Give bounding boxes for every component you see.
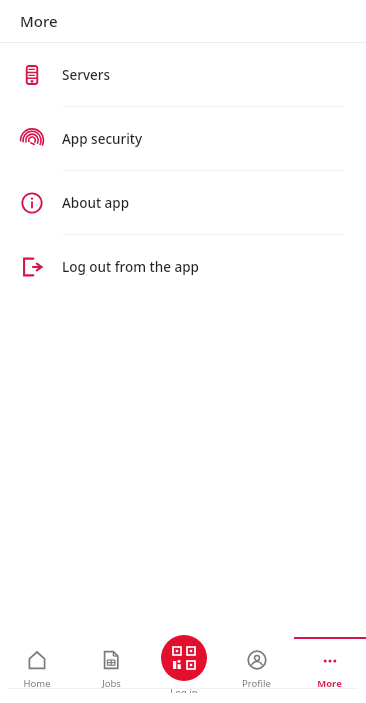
staticText: Jobs — [102, 677, 121, 690]
button[interactable]: Home — [0, 621, 74, 693]
staticText: Profile — [242, 677, 271, 690]
staticText: Servers — [62, 66, 111, 84]
button[interactable]: About app — [0, 171, 366, 234]
staticText: Log in — [170, 686, 198, 693]
button[interactable]: Log out from the app — [0, 235, 366, 298]
button[interactable]: Log in — [147, 621, 220, 693]
staticText: Home — [23, 677, 51, 690]
button[interactable]: App security — [0, 107, 366, 170]
button[interactable]: More — [293, 621, 366, 693]
staticText: App security — [62, 130, 143, 148]
staticText: About app — [62, 194, 130, 212]
button[interactable]: Jobs — [74, 621, 147, 693]
staticText: More — [20, 11, 58, 31]
button[interactable]: Servers — [0, 43, 366, 106]
staticText: More — [317, 677, 342, 690]
staticText: Log out from the app — [62, 258, 199, 276]
button[interactable]: Profile — [220, 621, 293, 693]
